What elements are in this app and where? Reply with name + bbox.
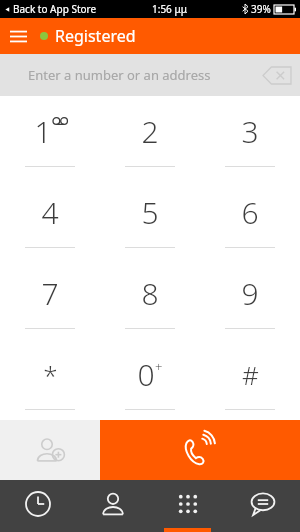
button[interactable]: 4 (0, 177, 100, 258)
staticText: Back to App Store (13, 2, 97, 16)
button[interactable]: Messages (225, 480, 300, 532)
button[interactable]: 7 (0, 258, 100, 339)
staticText: # (242, 357, 259, 392)
staticText: 9 (241, 273, 259, 314)
staticText: Enter a number or an address (28, 66, 211, 84)
staticText: 7 (41, 273, 59, 314)
button[interactable]: 2 (100, 96, 200, 177)
button[interactable]: Keypad (150, 480, 225, 532)
staticText: 39% (251, 2, 271, 16)
button[interactable]: 5 (100, 177, 200, 258)
staticText: 4 (41, 192, 59, 233)
button[interactable]: 0 (100, 339, 200, 420)
button[interactable]: Contacts (75, 480, 150, 532)
button[interactable]: * (0, 339, 100, 420)
button[interactable]: Add contact (0, 420, 100, 480)
button[interactable]: Call (100, 420, 300, 480)
staticText: 8 (141, 273, 159, 314)
button[interactable]: 6 (200, 177, 300, 258)
staticText: 1:56 μμ (152, 2, 187, 16)
button[interactable]: Recents (0, 480, 75, 532)
button[interactable]: # (200, 339, 300, 420)
button[interactable]: Menu (0, 18, 36, 54)
button[interactable]: 8 (100, 258, 200, 339)
button[interactable]: 9 (200, 258, 300, 339)
button[interactable]: Backspace (254, 54, 300, 96)
staticText: 5 (141, 192, 159, 233)
staticText: + (155, 358, 163, 376)
staticText: 1 (34, 111, 52, 152)
staticText: Registered (55, 25, 136, 47)
button[interactable]: 3 (200, 96, 300, 177)
staticText: * (43, 357, 58, 392)
staticText: 2 (141, 111, 159, 152)
staticText: 6 (241, 192, 259, 233)
staticText: 3 (241, 111, 259, 152)
button[interactable]: Enter a number or an address (0, 54, 300, 96)
staticText: 0 (137, 354, 155, 395)
button[interactable]: 1 (0, 96, 100, 177)
